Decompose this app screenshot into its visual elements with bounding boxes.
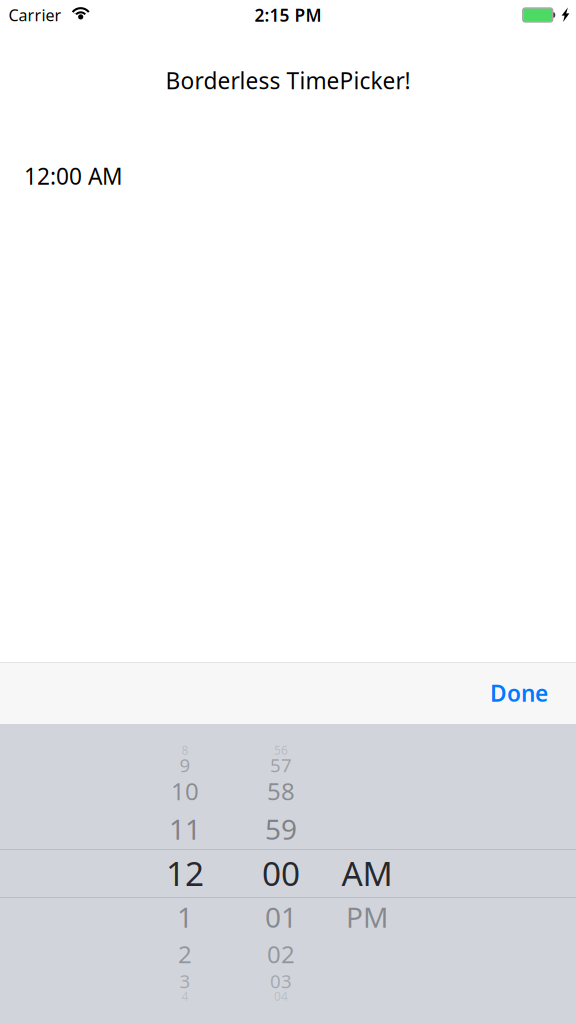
staticText: 2 (178, 938, 192, 970)
staticText: Carrier (8, 4, 61, 26)
staticText: 59 (265, 810, 297, 848)
staticText: 1 (177, 898, 193, 936)
staticText: 2:15 PM (254, 3, 321, 26)
staticText: Done (490, 678, 548, 708)
staticText: 3 (179, 969, 190, 993)
staticText: 9 (179, 753, 190, 777)
staticText: 11 (169, 810, 201, 848)
button[interactable]: 00 (237, 724, 325, 1024)
staticText: 04 (274, 988, 288, 1004)
staticText: 57 (270, 753, 292, 777)
staticText: Borderless TimePicker! (165, 65, 410, 95)
button[interactable]: Done (478, 668, 560, 718)
staticText: 58 (267, 775, 295, 807)
staticText: 12:00 AM (24, 161, 123, 191)
staticText: 4 (181, 988, 188, 1004)
staticText: 10 (171, 775, 199, 807)
staticText: 12 (166, 851, 204, 895)
staticText: AM (341, 851, 392, 895)
staticText: 02 (267, 938, 295, 970)
staticText: 03 (270, 969, 292, 993)
button[interactable]: 12 (141, 724, 229, 1024)
button[interactable]: AM (323, 724, 411, 1024)
staticText: 8 (181, 742, 188, 758)
staticText: PM (346, 898, 388, 936)
staticText: 01 (265, 898, 297, 936)
staticText: 00 (262, 851, 300, 895)
staticText: 56 (274, 742, 288, 758)
